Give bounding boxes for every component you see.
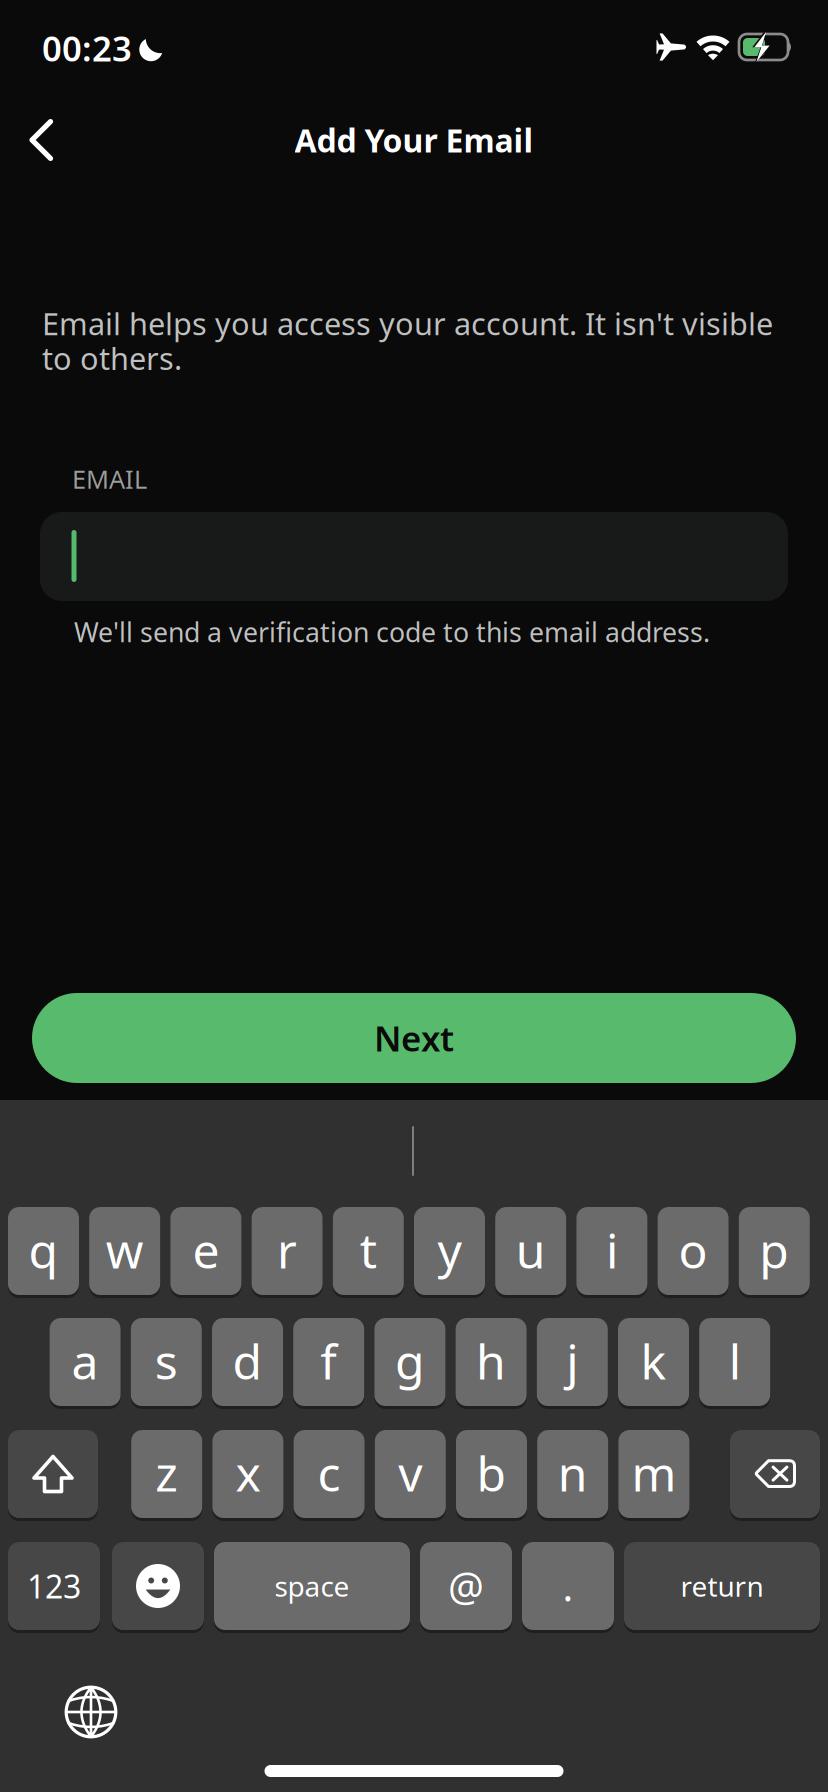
button[interactable]: Back <box>5 104 77 176</box>
staticText: a <box>72 1329 99 1393</box>
button[interactable]: return <box>624 1540 820 1632</box>
staticText: v <box>398 1441 422 1505</box>
staticText: k <box>640 1329 666 1393</box>
staticText: t <box>360 1218 377 1282</box>
staticText: . <box>562 1559 573 1612</box>
button[interactable]: Delete <box>730 1428 820 1520</box>
staticText: We'll send a verification code to this e… <box>74 614 710 650</box>
button[interactable]: 123 <box>8 1540 100 1632</box>
staticText: Add Your Email <box>294 119 533 161</box>
staticText: y <box>437 1218 461 1282</box>
button[interactable]: Emoji <box>112 1540 204 1632</box>
staticText: c <box>318 1441 341 1505</box>
staticText: i <box>606 1218 618 1282</box>
button[interactable]: r <box>252 1205 323 1297</box>
button[interactable]: l <box>699 1316 770 1408</box>
staticText: g <box>395 1329 425 1393</box>
staticText: r <box>277 1218 297 1282</box>
button[interactable]: g <box>374 1316 445 1408</box>
button[interactable]: f <box>293 1316 364 1408</box>
staticText: l <box>729 1329 741 1393</box>
staticText: d <box>232 1329 262 1393</box>
button[interactable]: o <box>658 1205 729 1297</box>
staticText: s <box>155 1329 178 1393</box>
button[interactable]: . <box>522 1540 614 1632</box>
staticText: @ <box>448 1559 484 1612</box>
button[interactable]: y <box>414 1205 485 1297</box>
button[interactable]: s <box>131 1316 202 1408</box>
button[interactable]: Next keyboard <box>56 1677 126 1747</box>
button[interactable]: e <box>170 1205 241 1297</box>
staticText: h <box>476 1329 506 1393</box>
button[interactable]: space <box>214 1540 410 1632</box>
staticText: o <box>679 1218 708 1282</box>
button[interactable]: u <box>495 1205 566 1297</box>
button[interactable]: p <box>739 1205 810 1297</box>
button[interactable]: k <box>618 1316 689 1408</box>
staticText: EMAIL <box>72 462 147 496</box>
staticText: Next <box>374 1015 454 1061</box>
staticText: q <box>28 1218 58 1282</box>
button[interactable]: Next <box>32 993 796 1083</box>
button[interactable]: a <box>50 1316 121 1408</box>
button[interactable]: t <box>333 1205 404 1297</box>
button[interactable]: h <box>456 1316 527 1408</box>
staticText: u <box>516 1218 546 1282</box>
staticText: b <box>476 1441 506 1505</box>
staticText: f <box>320 1329 337 1393</box>
staticText: Email helps you access your account. It … <box>42 303 773 378</box>
staticText: n <box>558 1441 588 1505</box>
staticText: e <box>192 1218 219 1282</box>
button[interactable]: w <box>89 1205 160 1297</box>
button[interactable]: Shift <box>8 1428 98 1520</box>
button[interactable]: n <box>537 1428 608 1520</box>
button[interactable]: d <box>212 1316 283 1408</box>
staticText: x <box>235 1441 260 1505</box>
staticText: p <box>759 1218 789 1282</box>
staticText: j <box>566 1329 578 1393</box>
button[interactable]: z <box>131 1428 202 1520</box>
button[interactable]: v <box>375 1428 446 1520</box>
staticText: 123 <box>27 1565 81 1607</box>
button[interactable]: c <box>294 1428 365 1520</box>
staticText: z <box>155 1441 178 1505</box>
button[interactable]: @ <box>420 1540 512 1632</box>
staticText: w <box>106 1218 144 1282</box>
button[interactable]: x <box>212 1428 283 1520</box>
button[interactable]: m <box>618 1428 689 1520</box>
staticText: space <box>274 1567 349 1605</box>
staticText: return <box>680 1567 763 1605</box>
staticText: 00:23 <box>42 25 132 71</box>
button[interactable]: i <box>576 1205 647 1297</box>
button[interactable]: b <box>456 1428 527 1520</box>
button[interactable]: q <box>8 1205 79 1297</box>
button[interactable]: j <box>537 1316 608 1408</box>
staticText: m <box>631 1441 676 1505</box>
